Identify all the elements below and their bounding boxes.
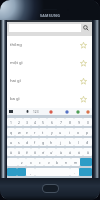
staticText: i [69,130,70,135]
button[interactable]: m [71,158,80,166]
staticText: m [74,160,78,165]
staticText: j [60,140,61,145]
staticText: , [30,170,31,175]
staticText: x [30,160,32,165]
button[interactable]: x [26,158,35,166]
button[interactable]: à [56,148,65,156]
button[interactable]: ê [23,148,31,156]
button[interactable]: r [31,128,39,136]
button[interactable]: o [74,128,83,136]
button[interactable] [79,168,92,176]
staticText: w [18,130,21,135]
staticText: ê [26,150,28,155]
staticText: á [69,150,71,155]
staticText: k [69,140,71,145]
button[interactable]: 0 [83,118,92,126]
button[interactable]: hai gì [7,72,92,90]
button[interactable]: i [65,128,74,136]
button[interactable]: . [70,168,79,176]
button[interactable]: ơ [39,148,47,156]
staticText: b [56,160,59,165]
button[interactable]: v [44,158,53,166]
button[interactable]: 4 [31,118,39,126]
staticText: 6 [51,120,53,125]
staticText: 123 [33,110,39,114]
button[interactable]: c [35,158,44,166]
staticText: 3 [26,120,28,125]
button[interactable]: Home [43,185,58,192]
button[interactable]: 9 [74,118,83,126]
staticText: . [74,170,75,175]
button[interactable]: ã [83,148,92,156]
staticText: ba gì [10,96,20,102]
staticText: s [18,140,20,145]
staticText: ă [10,150,12,155]
button[interactable]: Voice input [26,110,29,114]
button[interactable]: g [39,138,47,146]
button[interactable]: Search [81,24,91,32]
button[interactable]: 6 [47,118,56,126]
button[interactable]: ă [7,148,15,156]
staticText: p [86,130,89,135]
button[interactable]: một gì [7,54,92,72]
button[interactable]: h [47,138,56,146]
button[interactable]: 7 [56,118,65,126]
button[interactable]: b [53,158,62,166]
button[interactable]: 1 [7,118,15,126]
button[interactable]: d [23,138,31,146]
staticText: l [78,140,79,145]
button[interactable] [7,158,18,166]
staticText: ô [34,150,37,155]
button[interactable]: e [23,128,31,136]
staticText: f [34,140,36,145]
button[interactable]: 8 [65,118,74,126]
button[interactable]: thông [7,36,92,54]
button[interactable]: s [15,138,23,146]
button[interactable]: ả [74,148,83,156]
button[interactable] [17,168,26,176]
staticText: thông [10,42,22,48]
button[interactable]: â [15,148,23,156]
button[interactable]: q [7,128,15,136]
button[interactable]: á [65,148,74,156]
button[interactable]: l [74,138,83,146]
button[interactable]: ư [47,148,56,156]
staticText: hai gì [10,78,21,84]
staticText: 9 [78,120,80,125]
button[interactable]: t [39,128,47,136]
button[interactable] [7,168,17,176]
button[interactable]: 3 [23,118,31,126]
staticText: q [10,130,13,135]
button[interactable]: a [7,138,15,146]
staticText: ư [50,150,53,155]
button[interactable]: ba gì [7,90,92,108]
button[interactable]: 5 [39,118,47,126]
staticText: đ [86,140,89,145]
button[interactable]: đ [83,138,92,146]
staticText: g [42,140,45,145]
button[interactable]: ô [31,148,39,156]
button[interactable]: j [56,138,65,146]
button[interactable]: w [15,128,23,136]
button[interactable]: 2 [15,118,23,126]
button[interactable]: k [65,138,74,146]
button[interactable]: u [56,128,65,136]
staticText: ã [87,150,89,155]
staticText: â [18,150,20,155]
staticText: d [26,140,29,145]
staticText: 5 [42,120,44,125]
button[interactable]: , [26,168,35,176]
button[interactable]: n [62,158,71,166]
staticText: u [59,130,62,135]
button[interactable]: y [47,128,56,136]
staticText: t [42,130,44,135]
staticText: e [26,130,28,135]
button[interactable] [80,158,92,166]
button[interactable]: f [31,138,39,146]
button[interactable]: z [18,158,26,166]
button[interactable]: p [83,128,92,136]
staticText: a [10,140,12,145]
